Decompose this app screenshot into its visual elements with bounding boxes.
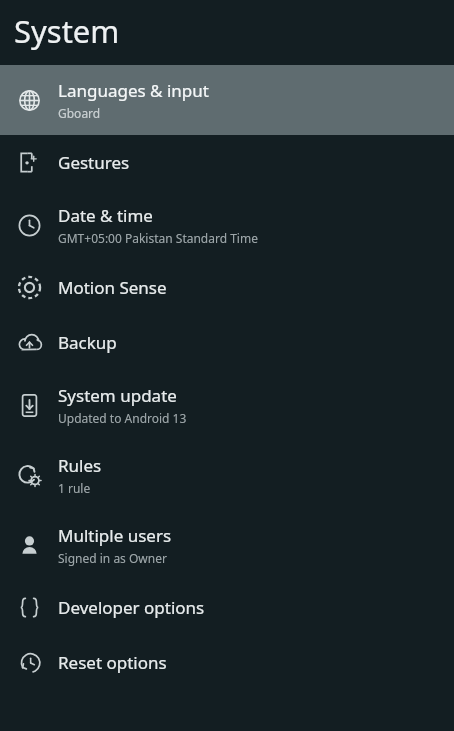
- staticText: Rules: [58, 454, 102, 477]
- button[interactable]: Multiple users: [0, 510, 454, 580]
- button[interactable]: Rules: [0, 440, 454, 510]
- staticText: System: [14, 10, 120, 52]
- button[interactable]: System update: [0, 370, 454, 440]
- button[interactable]: Languages and input: [0, 65, 454, 135]
- staticText: Multiple users: [58, 524, 172, 547]
- staticText: GMT+05:00 Pakistan Standard Time: [58, 230, 258, 246]
- button[interactable]: Motion Sense: [0, 260, 454, 315]
- staticText: Reset options: [58, 651, 167, 674]
- staticText: Gestures: [58, 151, 130, 174]
- button[interactable]: Developer options: [0, 580, 454, 635]
- staticText: Backup: [58, 331, 117, 354]
- staticText: Signed in as Owner: [58, 550, 167, 566]
- button[interactable]: Gestures: [0, 135, 454, 190]
- staticText: Developer options: [58, 596, 205, 619]
- staticText: 1 rule: [58, 480, 91, 496]
- staticText: Motion Sense: [58, 276, 167, 299]
- staticText: Date & time: [58, 204, 153, 227]
- staticText: Languages & input: [58, 79, 209, 102]
- staticText: Updated to Android 13: [58, 410, 187, 426]
- staticText: Gboard: [58, 105, 101, 121]
- button[interactable]: Date and time: [0, 190, 454, 260]
- button[interactable]: Reset options: [0, 635, 454, 690]
- button[interactable]: Backup: [0, 315, 454, 370]
- staticText: System update: [58, 384, 177, 407]
